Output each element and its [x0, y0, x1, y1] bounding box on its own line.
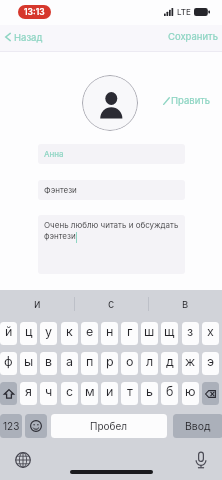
staticText: б	[166, 384, 174, 399]
staticText: ы	[24, 354, 34, 369]
staticText: й	[5, 324, 13, 339]
button[interactable]: Очень люблю читать и обсуждать фэнтези	[38, 215, 185, 274]
button[interactable]: ч	[40, 382, 57, 405]
button[interactable]: к	[61, 322, 78, 345]
button[interactable]: м	[81, 382, 98, 405]
staticText: я	[25, 384, 32, 399]
button[interactable]: 123	[0, 414, 22, 438]
button[interactable]: н	[101, 322, 118, 345]
button[interactable]: в	[148, 290, 222, 312]
staticText: с	[108, 297, 115, 310]
button[interactable]: х	[202, 322, 219, 345]
staticText: п	[86, 354, 94, 369]
staticText: е	[86, 324, 94, 339]
staticText: у	[45, 324, 53, 339]
staticText: LTE	[177, 7, 191, 17]
button[interactable]: Backspace	[202, 382, 219, 405]
button[interactable]: Пробел	[51, 414, 167, 438]
button[interactable]: ж	[182, 352, 199, 375]
staticText: х	[207, 324, 214, 339]
button[interactable]: д	[161, 352, 178, 375]
button[interactable]: ц	[20, 322, 37, 345]
button[interactable]: я	[20, 382, 37, 405]
button[interactable]: у	[40, 322, 57, 345]
button[interactable]: з	[182, 322, 199, 345]
staticText: щ	[164, 324, 175, 339]
staticText: Назад	[14, 32, 43, 43]
button[interactable]: ы	[20, 352, 37, 375]
staticText: з	[187, 324, 194, 339]
button[interactable]: ш	[141, 322, 158, 345]
button[interactable]: п	[81, 352, 98, 375]
button[interactable]: Фэнтези	[38, 180, 185, 200]
staticText: м	[85, 384, 95, 399]
button[interactable]: Назад	[4, 31, 43, 43]
staticText: о	[126, 354, 134, 369]
staticText: Пробел	[90, 420, 128, 432]
staticText: 13:13	[24, 7, 45, 17]
staticText: ч	[45, 384, 53, 399]
staticText: э	[207, 354, 215, 369]
button[interactable]: б	[161, 382, 178, 405]
button[interactable]: о	[121, 352, 138, 375]
button[interactable]: Ввод	[173, 414, 222, 438]
button[interactable]: р	[101, 352, 118, 375]
button[interactable]: Править	[163, 95, 211, 106]
button[interactable]: г	[121, 322, 138, 345]
staticText: т	[127, 384, 133, 399]
staticText: Сохранить	[168, 31, 218, 42]
button[interactable]: щ	[161, 322, 178, 345]
button[interactable]: т	[121, 382, 138, 405]
staticText: ш	[144, 324, 155, 339]
button[interactable]: ф	[0, 352, 17, 375]
staticText: р	[106, 354, 114, 369]
button[interactable]: Change keyboard	[15, 452, 31, 468]
staticText: ю	[185, 384, 196, 399]
staticText: в	[45, 354, 53, 369]
staticText: ь	[146, 384, 153, 399]
button[interactable]: э	[202, 352, 219, 375]
staticText: а	[66, 354, 74, 369]
button[interactable]: л	[141, 352, 158, 375]
button[interactable]: а	[61, 352, 78, 375]
staticText: с	[66, 384, 74, 399]
button[interactable]: и	[0, 290, 74, 312]
staticText: г	[127, 324, 133, 339]
staticText: ф	[4, 354, 13, 369]
staticText: ц	[25, 324, 33, 339]
staticText: к	[66, 324, 73, 339]
button[interactable]: Анна	[38, 144, 185, 164]
staticText: в	[182, 297, 189, 310]
button[interactable]: ь	[141, 382, 158, 405]
staticText: Анна	[44, 149, 64, 159]
staticText: Фэнтези	[44, 185, 77, 195]
staticText: и	[34, 297, 41, 310]
button[interactable]: Emoji	[25, 414, 47, 438]
button[interactable]: Shift	[0, 382, 17, 405]
staticText: и	[106, 384, 114, 399]
button[interactable]: с	[61, 382, 78, 405]
button[interactable]: ю	[182, 382, 199, 405]
button[interactable]: е	[81, 322, 98, 345]
button[interactable]: Сохранить	[168, 31, 218, 42]
staticText: Править	[171, 95, 211, 106]
button[interactable]: й	[0, 322, 17, 345]
button[interactable]: и	[101, 382, 118, 405]
button[interactable]: Profile photo	[82, 75, 138, 131]
button[interactable]: в	[40, 352, 57, 375]
staticText: 123	[3, 420, 20, 432]
staticText: ж	[185, 354, 196, 369]
staticText: л	[146, 354, 154, 369]
staticText: Очень люблю читать и обсуждать фэнтези	[44, 220, 180, 241]
button[interactable]: Dictation	[194, 451, 208, 469]
staticText: н	[106, 324, 114, 339]
staticText: Ввод	[185, 420, 211, 433]
button[interactable]: с	[74, 290, 148, 312]
staticText: д	[166, 354, 174, 369]
